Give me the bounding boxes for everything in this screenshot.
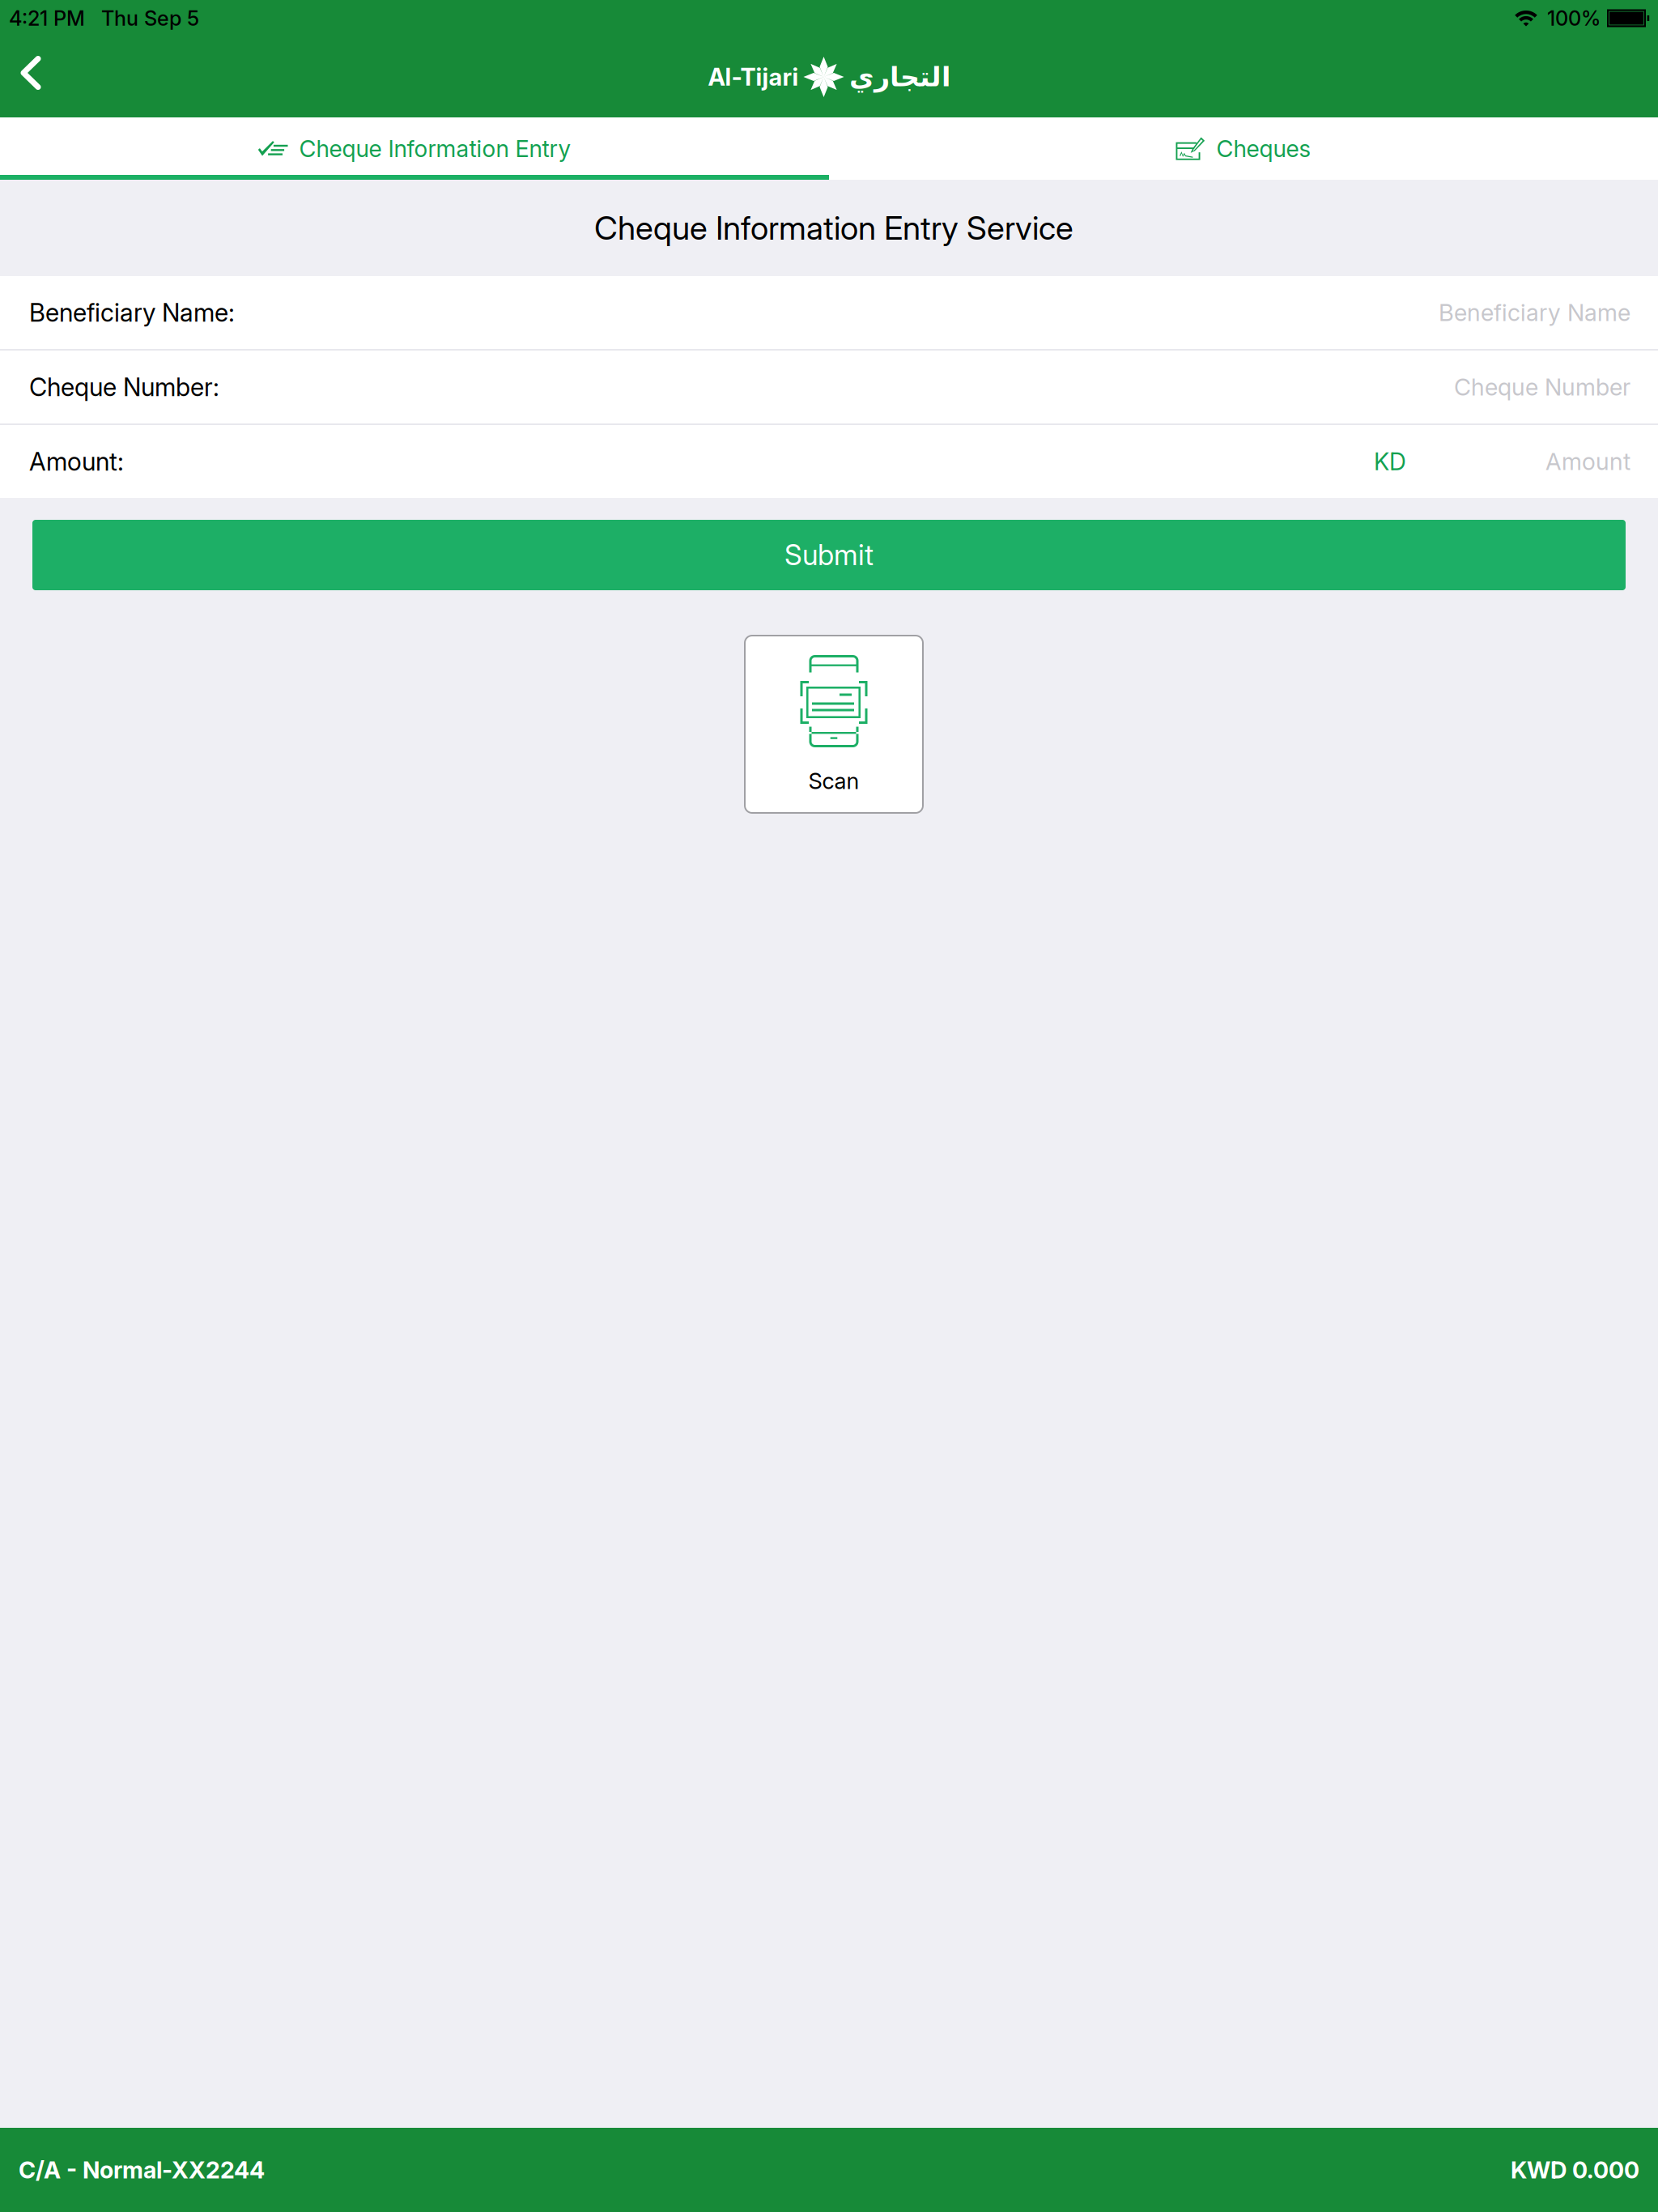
- staticText: التجاري: [849, 61, 950, 93]
- staticText: Amount:: [29, 446, 124, 476]
- button[interactable]: Cheque Information Entry: [0, 117, 829, 180]
- staticText: Cheque Information Entry Service: [594, 208, 1073, 248]
- staticText: Cheque Number: [1454, 373, 1630, 401]
- staticText: Beneficiary Name:: [29, 297, 235, 328]
- staticText: Al-Tijari: [708, 63, 799, 91]
- staticText: Cheques: [1216, 135, 1311, 163]
- staticText: KWD 0.000: [1511, 2156, 1639, 2184]
- staticText: Thu Sep 5: [101, 6, 199, 31]
- button[interactable]: Submit: [32, 520, 1626, 590]
- staticText: Submit: [784, 538, 874, 572]
- staticText: 100%: [1547, 6, 1601, 31]
- staticText: 4:21 PM: [9, 6, 85, 31]
- staticText: Beneficiary Name: [1439, 298, 1630, 327]
- button[interactable]: Cheques: [829, 117, 1658, 180]
- button[interactable]: Scan: [745, 636, 923, 813]
- staticText: C/A - Normal-XX2244: [19, 2156, 265, 2184]
- staticText: Scan: [808, 768, 859, 794]
- button[interactable]: Back: [0, 36, 62, 117]
- staticText: Amount: [1545, 447, 1630, 476]
- staticText: KD: [1374, 447, 1406, 476]
- staticText: Cheque Information Entry: [299, 135, 571, 163]
- staticText: Cheque Number:: [29, 372, 219, 402]
